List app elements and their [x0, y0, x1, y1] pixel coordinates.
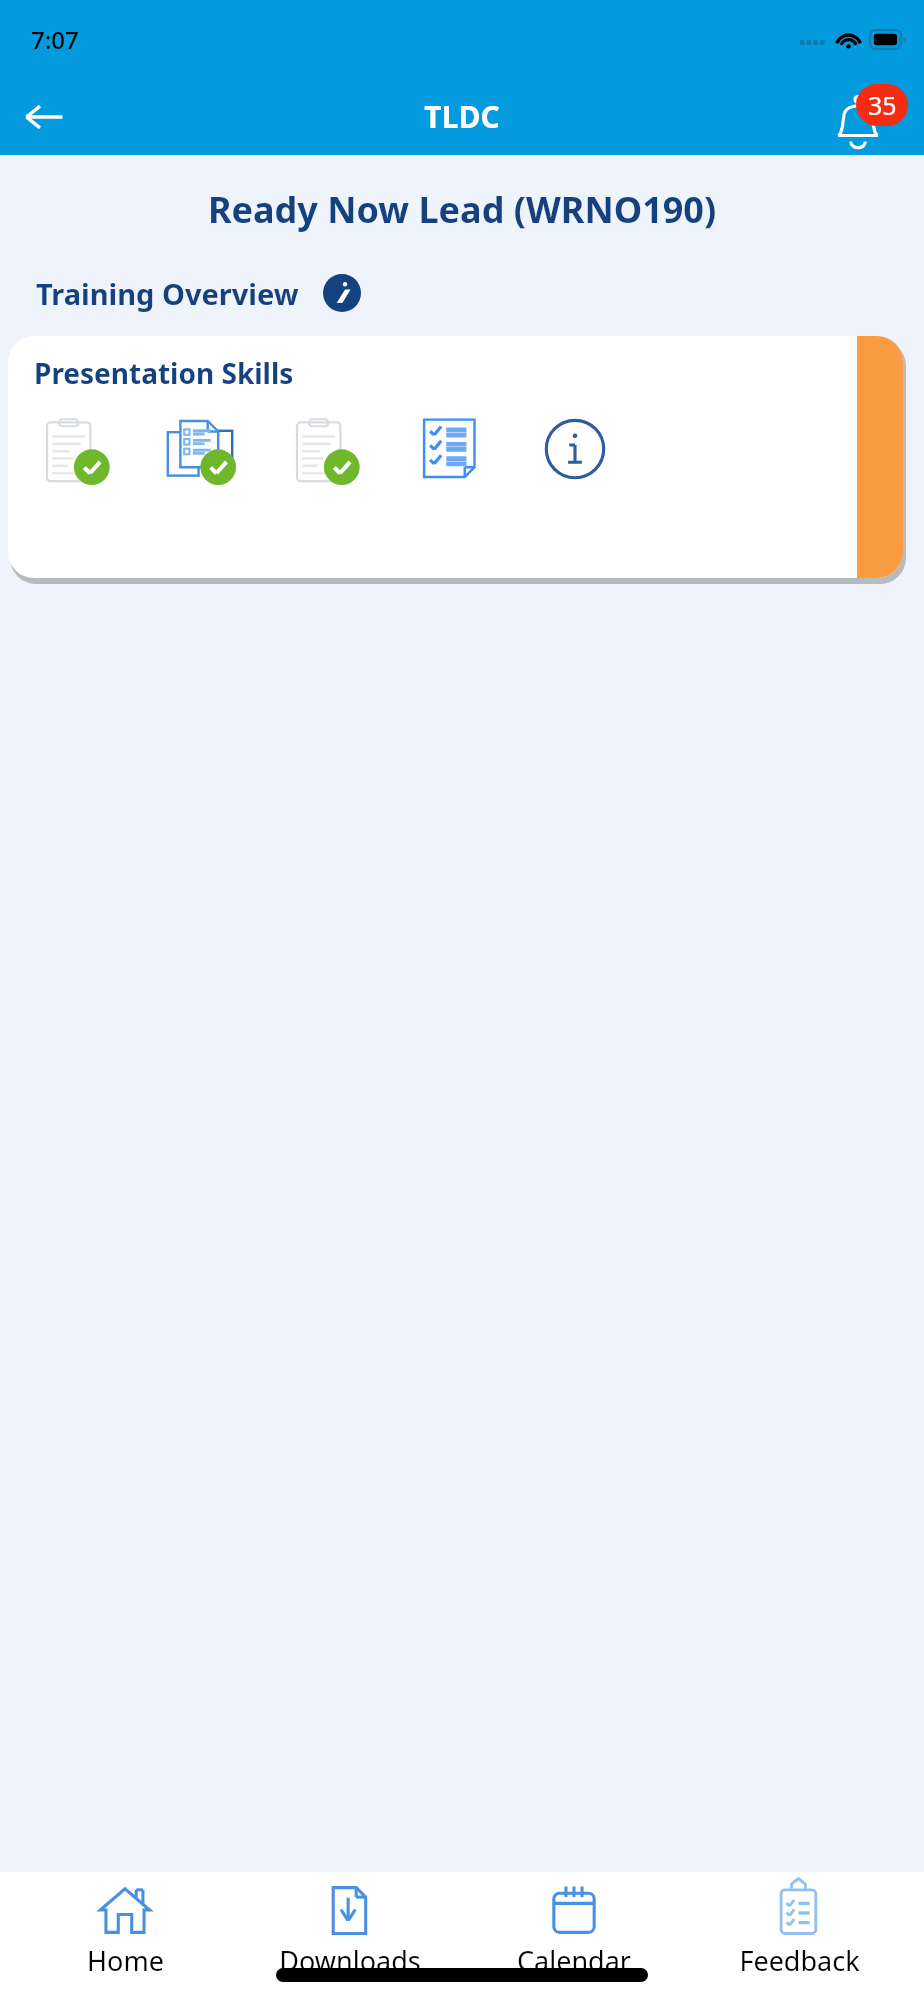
staticText: Home — [87, 1942, 164, 1979]
staticText: Presentation Skills — [34, 354, 294, 392]
staticText: Feedback — [739, 1942, 860, 1979]
staticText: Downloads — [279, 1942, 421, 1979]
staticText: Training Overview — [36, 274, 299, 313]
staticText: 7:07 — [31, 23, 79, 56]
button[interactable]: Home — [25, 1872, 225, 2000]
button[interactable]: Presentation Skills — [8, 336, 903, 578]
staticText: Calendar — [517, 1942, 631, 1979]
button[interactable]: Notifications, 35 unread — [830, 82, 910, 152]
button[interactable]: Training Overview — [36, 272, 363, 314]
staticText: 35 — [868, 88, 897, 122]
button[interactable]: Training item — [38, 412, 112, 486]
button[interactable]: Back — [12, 85, 76, 149]
staticText: Ready Now Lead (WRNO190) — [0, 185, 924, 234]
button[interactable]: Training item — [413, 412, 487, 486]
button[interactable]: Feedback — [699, 1872, 899, 2000]
button[interactable]: Downloads — [250, 1872, 450, 2000]
button[interactable]: Training item — [288, 412, 362, 486]
staticText: TLDC — [424, 96, 500, 137]
button[interactable]: Training item — [538, 412, 612, 486]
other: Training overview info — [321, 272, 363, 314]
button[interactable]: Calendar — [474, 1872, 674, 2000]
button[interactable]: Training item — [163, 412, 237, 486]
